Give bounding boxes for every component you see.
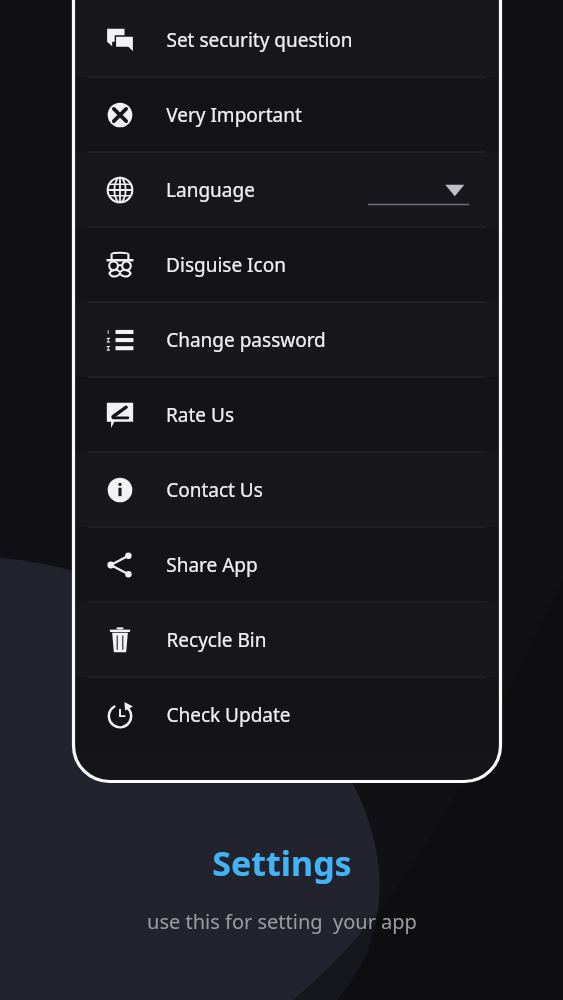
button[interactable]: Select language bbox=[366, 152, 486, 227]
staticText: Language bbox=[166, 177, 255, 203]
staticText: Share App bbox=[166, 552, 258, 578]
button[interactable]: Rate Us bbox=[74, 377, 500, 452]
button[interactable]: Contact Us bbox=[74, 452, 500, 527]
staticText: Contact Us bbox=[166, 477, 263, 503]
staticText: Recycle Bin bbox=[166, 627, 267, 653]
staticText: Check Update bbox=[166, 702, 291, 728]
button[interactable]: Disguise Icon bbox=[74, 227, 500, 302]
button[interactable]: Check Update bbox=[74, 677, 500, 752]
staticText: use this for setting your app bbox=[147, 908, 417, 935]
button[interactable]: Set security question bbox=[74, 2, 500, 77]
button[interactable]: Recycle Bin bbox=[74, 602, 500, 677]
button[interactable]: Language bbox=[74, 152, 500, 227]
staticText: Disguise Icon bbox=[166, 252, 286, 278]
button[interactable]: Change password bbox=[74, 302, 500, 377]
staticText: Change password bbox=[166, 327, 326, 353]
button[interactable]: Share App bbox=[74, 527, 500, 602]
button[interactable]: Very Important bbox=[74, 77, 500, 152]
staticText: Set security question bbox=[166, 27, 353, 53]
staticText: Very Important bbox=[166, 102, 302, 128]
staticText: Settings bbox=[212, 840, 352, 886]
staticText: Rate Us bbox=[166, 402, 234, 428]
